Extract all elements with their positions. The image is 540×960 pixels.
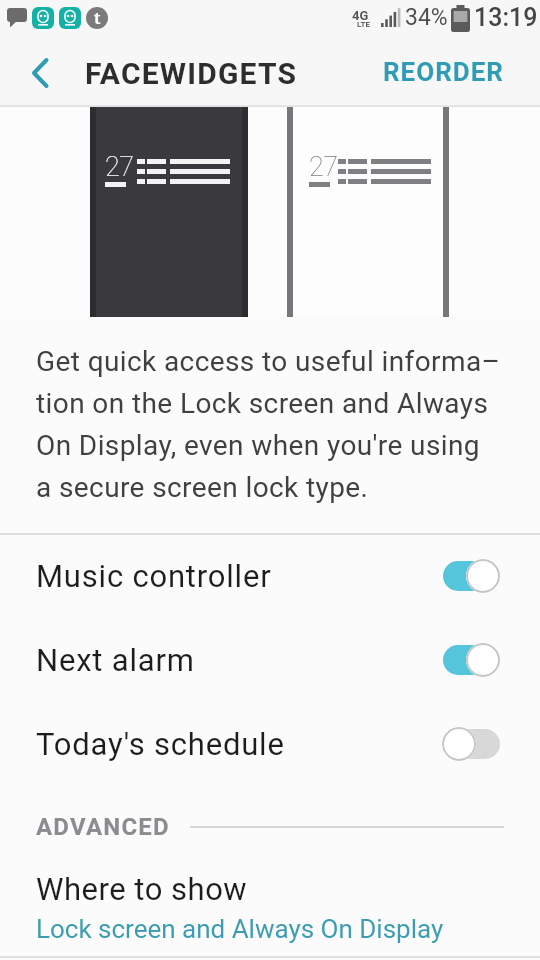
staticText: FACEWIDGETS [85,56,298,91]
staticText: 4G [352,8,369,23]
staticText: 13:19 [474,3,538,32]
staticText: t [94,7,101,29]
staticText: LTE [357,20,370,29]
staticText: Where to show [36,871,248,907]
staticText: 34% [405,4,448,31]
staticText: REORDER [383,57,504,87]
staticText: Get quick access to useful informa– tion… [36,345,501,504]
staticText: ADVANCED [36,813,170,841]
staticText: Next alarm [36,642,195,678]
staticText: Music controller [36,558,272,594]
staticText: Today's schedule [36,726,285,762]
staticText: 27 [309,151,338,183]
staticText: 27 [105,151,134,183]
staticText: Lock screen and Always On Display [36,914,444,944]
